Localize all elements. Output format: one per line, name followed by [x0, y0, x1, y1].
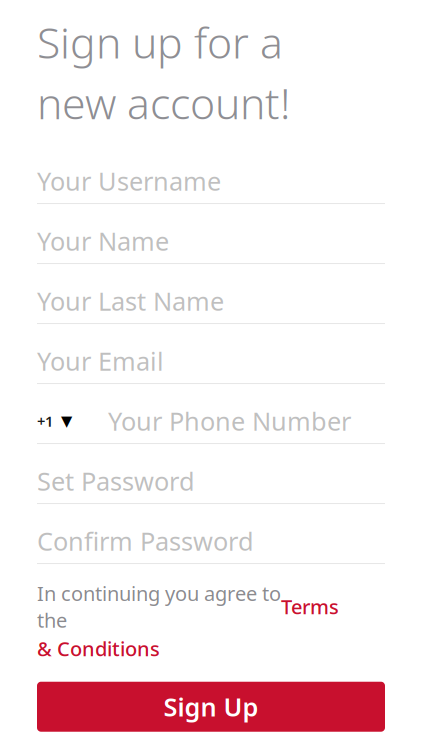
staticText: & Conditions — [37, 635, 160, 662]
staticText: Confirm Password — [37, 524, 254, 558]
button[interactable]: Terms — [281, 593, 339, 620]
button[interactable]: Sign Up — [37, 682, 385, 732]
staticText: ▼ — [61, 413, 72, 429]
staticText: Sign Up — [163, 690, 258, 723]
staticText: Your Phone Number — [108, 404, 351, 438]
staticText: Terms — [281, 593, 339, 620]
staticText: +1 — [37, 411, 53, 431]
button[interactable]: Select country code — [37, 399, 72, 443]
staticText: new account! — [37, 74, 290, 131]
staticText: Your Username — [37, 164, 221, 198]
staticText: In continuing you agree to the — [37, 580, 281, 633]
staticText: Set Password — [37, 464, 195, 498]
button[interactable]: & Conditions — [37, 635, 160, 662]
staticText: Your Name — [37, 224, 169, 258]
staticText: Your Last Name — [37, 284, 224, 318]
staticText: Sign up for a — [37, 14, 283, 70]
staticText: Your Email — [37, 344, 164, 378]
